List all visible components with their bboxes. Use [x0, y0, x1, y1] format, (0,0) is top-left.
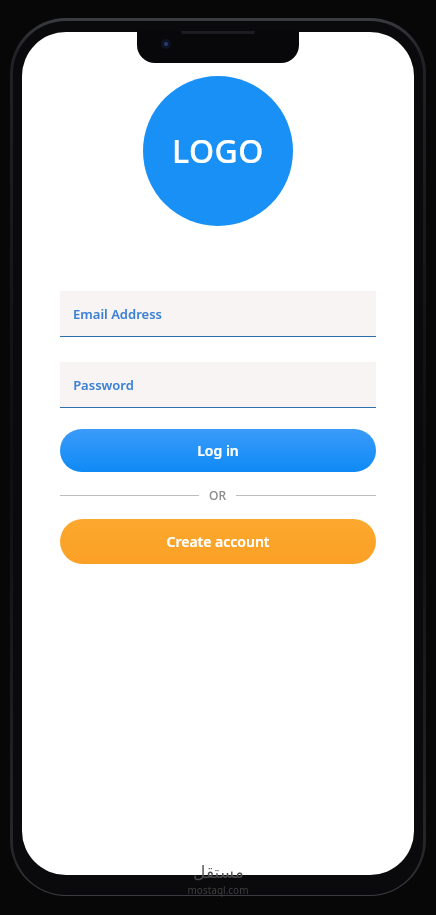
staticText: Password [73, 376, 134, 394]
staticText: LOGO [172, 129, 264, 173]
staticText: mostaql.com [187, 883, 249, 897]
button[interactable]: LOGO [143, 76, 293, 226]
button[interactable]: Password [60, 362, 376, 408]
staticText: Create account [166, 532, 270, 551]
staticText: OR [209, 487, 226, 503]
button[interactable]: Create account [60, 519, 376, 564]
button[interactable]: Email Address [60, 291, 376, 337]
button[interactable]: Log in [60, 429, 376, 472]
staticText: Email Address [73, 305, 162, 323]
staticText: Log in [197, 441, 239, 460]
staticText: مستقل [193, 862, 244, 882]
